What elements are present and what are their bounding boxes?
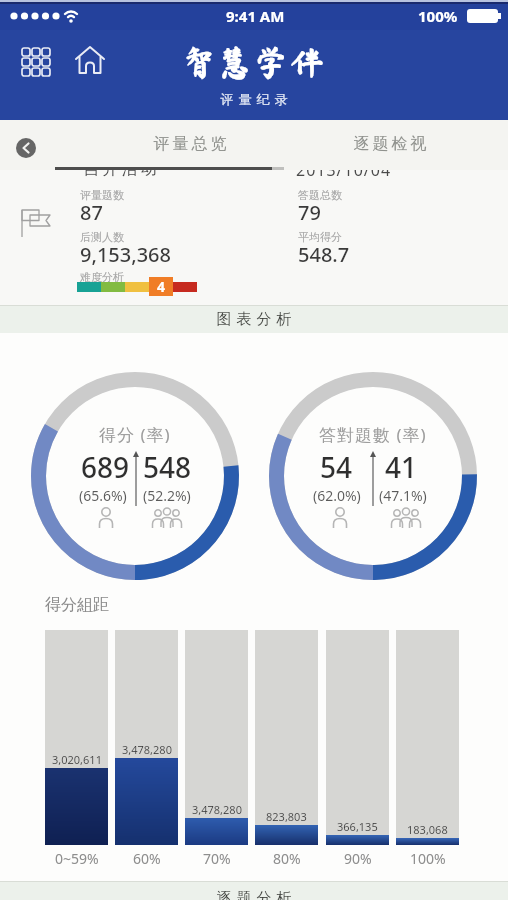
staticText: 9:41 AM	[226, 6, 285, 26]
staticText: 41	[385, 448, 418, 482]
staticText: 3,478,280	[122, 742, 172, 756]
staticText: 图表分析	[214, 310, 294, 329]
button[interactable]: 评量总览	[110, 120, 270, 167]
button[interactable]	[16, 42, 56, 82]
staticText: 80%	[273, 849, 301, 867]
staticText: 87	[80, 199, 103, 226]
staticText: 100%	[418, 6, 458, 26]
staticText: 100%	[410, 849, 446, 867]
staticText: 自开活动	[82, 170, 158, 179]
staticText: (52.2%)	[143, 486, 191, 505]
staticText: (65.6%)	[79, 486, 127, 505]
staticText: 366,135	[337, 819, 378, 833]
staticText: 4	[157, 277, 166, 296]
button[interactable]	[72, 42, 112, 82]
staticText: (47.1%)	[379, 486, 427, 505]
staticText: 60%	[133, 849, 161, 867]
staticText: 得分 (率)	[99, 423, 171, 443]
staticText: 3,020,611	[52, 752, 102, 766]
staticText: 难度分析	[80, 270, 124, 284]
button[interactable]: 逐题检视	[310, 120, 470, 167]
staticText: 评量总览	[152, 134, 228, 154]
staticText: 3,478,280	[192, 802, 242, 816]
staticText: 平均得分	[298, 230, 342, 244]
staticText: 逐题分析	[214, 889, 294, 900]
staticText: 9,153,368	[80, 241, 171, 268]
staticText: 54	[320, 448, 353, 482]
button[interactable]	[8, 130, 44, 166]
staticText: (62.0%)	[313, 486, 361, 505]
staticText: 2013/10/04	[296, 170, 392, 181]
staticText: 70%	[203, 849, 231, 867]
staticText: 答對題數 (率)	[319, 423, 427, 443]
staticText: 得分組距	[45, 595, 109, 615]
staticText: 逐题检视	[352, 134, 428, 154]
staticText: 183,068	[407, 822, 448, 836]
staticText: 答题总数	[298, 188, 342, 202]
staticText: 90%	[344, 849, 372, 867]
staticText: 689	[81, 448, 130, 482]
staticText: 0~59%	[55, 849, 99, 867]
staticText: 智慧学伴	[182, 45, 326, 79]
staticText: 评量题数	[80, 188, 124, 202]
staticText: 823,803	[266, 809, 307, 823]
staticText: 79	[298, 199, 321, 226]
staticText: 后测人数	[80, 230, 124, 244]
staticText: 548.7	[298, 241, 350, 268]
staticText: 548	[143, 448, 192, 482]
staticText: 评量纪录	[218, 91, 290, 107]
